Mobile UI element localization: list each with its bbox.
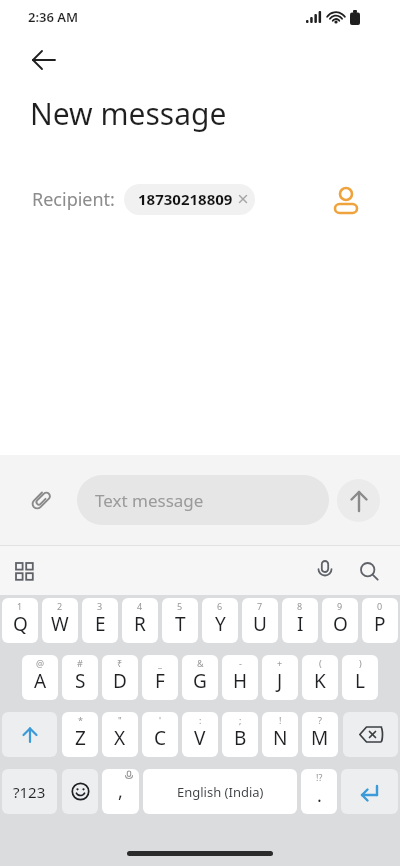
staticText: 7 (257, 600, 263, 612)
button[interactable]: 18730218809 (124, 184, 255, 215)
staticText: , (118, 779, 123, 804)
staticText: E (95, 611, 106, 637)
staticText: G (193, 668, 207, 694)
staticText: 8 (297, 600, 303, 612)
staticText: C (154, 725, 167, 751)
button[interactable] (32, 47, 58, 73)
button[interactable] (343, 712, 398, 757)
staticText: : (199, 714, 202, 726)
staticText: M (311, 725, 329, 751)
staticText: ; (239, 714, 242, 726)
staticText: ? (318, 714, 322, 726)
staticText: A (34, 668, 47, 694)
button[interactable]: 4 (122, 598, 158, 643)
button[interactable]: @ (22, 655, 58, 700)
staticText: ! (279, 714, 282, 726)
staticText: English (India) (177, 783, 264, 801)
staticText: 2 (57, 600, 63, 612)
staticText: @ (36, 657, 45, 669)
button[interactable] (62, 769, 98, 814)
button[interactable]: 8 (282, 598, 318, 643)
staticText: _ (158, 657, 162, 669)
staticText: W (51, 611, 69, 637)
staticText: Text message (95, 489, 204, 512)
button[interactable]: ' (142, 712, 178, 757)
button[interactable]: ?123 (2, 769, 57, 814)
button[interactable]: _ (142, 655, 178, 700)
staticText: 4 (137, 600, 143, 612)
button[interactable] (333, 187, 359, 213)
staticText: - (239, 657, 242, 669)
staticText: # (77, 657, 83, 669)
staticText: U (253, 611, 267, 637)
button[interactable]: 2 (42, 598, 78, 643)
staticText: S (75, 668, 86, 694)
button[interactable] (354, 556, 384, 586)
button[interactable]: , (102, 769, 139, 814)
staticText: Z (75, 725, 86, 751)
button[interactable]: : (182, 712, 218, 757)
staticText: & (197, 657, 204, 669)
staticText: 18730218809 (138, 189, 233, 209)
staticText: 9 (337, 600, 343, 612)
button[interactable]: ₹ (102, 655, 138, 700)
button[interactable] (9, 556, 39, 586)
button[interactable]: ) (342, 655, 378, 700)
button[interactable]: ! (262, 712, 298, 757)
staticText: R (134, 611, 146, 637)
staticText: F (155, 668, 165, 694)
staticText: * (78, 714, 83, 726)
button[interactable]: !? (301, 769, 337, 814)
staticText: ( (319, 657, 322, 669)
button[interactable] (310, 556, 340, 586)
staticText: D (113, 668, 127, 694)
staticText: ) (359, 657, 362, 669)
staticText: Y (215, 611, 226, 637)
staticText: T (175, 611, 186, 637)
button[interactable]: 9 (322, 598, 358, 643)
button[interactable]: " (102, 712, 138, 757)
staticText: . (317, 783, 322, 808)
staticText: B (234, 725, 247, 751)
button[interactable] (341, 769, 398, 814)
button[interactable]: 3 (82, 598, 118, 643)
button[interactable]: ( (302, 655, 338, 700)
button[interactable]: Text message (77, 475, 329, 525)
button[interactable] (337, 479, 380, 522)
staticText: " (118, 714, 122, 726)
staticText: Recipient: (32, 187, 115, 212)
button[interactable]: 0 (362, 598, 398, 643)
button[interactable]: + (262, 655, 298, 700)
staticText: ?123 (13, 782, 46, 802)
button[interactable]: English (India) (143, 769, 297, 814)
button[interactable]: * (62, 712, 98, 757)
staticText: J (277, 668, 283, 694)
staticText: 1 (17, 600, 23, 612)
button[interactable]: - (222, 655, 258, 700)
button[interactable]: & (182, 655, 218, 700)
staticText: ₹ (117, 657, 123, 669)
staticText: I (297, 611, 304, 637)
staticText: Q (13, 611, 28, 637)
button[interactable]: 7 (242, 598, 278, 643)
staticText: 6 (217, 600, 223, 612)
staticText: + (277, 657, 283, 669)
staticText: K (314, 668, 326, 694)
staticText: O (333, 611, 348, 637)
button[interactable] (2, 712, 57, 757)
button[interactable]: 1 (2, 598, 38, 643)
button[interactable]: 5 (162, 598, 198, 643)
button[interactable]: ; (222, 712, 258, 757)
staticText: H (233, 668, 248, 694)
staticText: 5 (177, 600, 183, 612)
staticText: 2:36 AM (28, 8, 79, 26)
button[interactable]: # (62, 655, 98, 700)
staticText: New message (30, 93, 227, 134)
button[interactable]: 6 (202, 598, 238, 643)
staticText: 3 (97, 600, 103, 612)
button[interactable] (20, 479, 62, 521)
staticText: ' (159, 714, 162, 726)
staticText: 0 (377, 600, 383, 612)
staticText: L (355, 668, 365, 694)
button[interactable]: ? (302, 712, 338, 757)
